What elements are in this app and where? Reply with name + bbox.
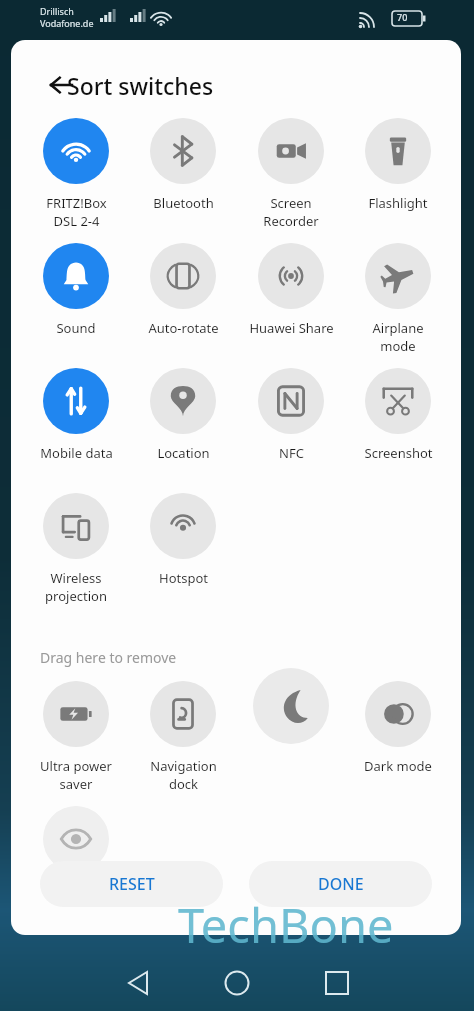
button[interactable]: Ultra power saver: [30, 681, 122, 793]
button[interactable]: Home: [207, 943, 267, 1003]
button[interactable]: Bluetooth: [137, 118, 229, 212]
button[interactable]: Back: [41, 65, 81, 105]
button[interactable]: RESET: [40, 861, 223, 907]
staticText: Sound: [56, 319, 96, 337]
button[interactable]: Dark mode: [352, 681, 444, 775]
button[interactable]: Back: [108, 943, 168, 1003]
button[interactable]: Screenshot: [352, 368, 444, 462]
staticText: NFC: [279, 444, 304, 462]
staticText: Sort switches: [67, 70, 214, 101]
button[interactable]: Mobile data: [30, 368, 122, 462]
button[interactable]: NFC: [245, 368, 337, 462]
staticText: Drag here to remove: [40, 648, 177, 667]
button[interactable]: Flashlight: [352, 118, 444, 212]
button[interactable]: Eye comfort: [43, 806, 109, 872]
staticText: Dark mode: [364, 757, 432, 775]
staticText: Airplane mode: [372, 319, 424, 355]
button[interactable]: Screen Recorder: [245, 118, 337, 230]
button[interactable]: Huawei Share: [245, 243, 337, 337]
button[interactable]: Auto-rotate: [137, 243, 229, 337]
button[interactable]: Wireless projection: [30, 493, 122, 605]
staticText: 70: [397, 11, 408, 23]
button[interactable]: Navigation dock: [137, 681, 229, 793]
staticText: Flashlight: [368, 194, 428, 212]
staticText: DONE: [318, 873, 364, 895]
staticText: FRITZ!Box DSL 2-4: [46, 194, 107, 230]
staticText: Ultra power saver: [40, 757, 112, 793]
button[interactable]: DONE: [249, 861, 432, 907]
button[interactable]: Location: [137, 368, 229, 462]
button[interactable]: Sound: [30, 243, 122, 337]
staticText: Auto-rotate: [148, 319, 219, 337]
staticText: RESET: [109, 873, 155, 895]
staticText: Huawei Share: [249, 319, 334, 337]
button[interactable]: Recents: [307, 943, 367, 1003]
staticText: Screen Recorder: [263, 194, 319, 230]
staticText: Vodafone.de: [40, 17, 94, 29]
staticText: Screenshot: [364, 444, 433, 462]
button[interactable]: Hotspot: [137, 493, 229, 587]
staticText: Mobile data: [40, 444, 113, 462]
staticText: Wireless projection: [45, 569, 107, 605]
staticText: Drillisch: [40, 5, 74, 17]
staticText: Hotspot: [159, 569, 208, 587]
button[interactable]: Airplane mode: [352, 243, 444, 355]
button[interactable]: FRITZ!Box DSL 2-4: [30, 118, 122, 230]
staticText: Bluetooth: [153, 194, 214, 212]
button[interactable]: Do not disturb: [253, 668, 329, 744]
staticText: Navigation dock: [150, 757, 217, 793]
staticText: Location: [157, 444, 210, 462]
staticText: TechBone: [178, 893, 394, 957]
